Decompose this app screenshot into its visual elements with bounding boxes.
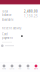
staticText: 1,150.25 — [24, 14, 38, 18]
button[interactable]: Cards — [8, 62, 16, 72]
staticText: More — [34, 68, 38, 70]
staticText: Available — [2, 18, 14, 21]
button[interactable]: Help — [24, 62, 32, 72]
staticText: Recent activity — [2, 26, 21, 30]
staticText: 2,480.00 — [24, 10, 38, 13]
staticText: Overview — [2, 7, 13, 11]
button[interactable]: Pay — [16, 62, 24, 72]
staticText: Home — [2, 68, 6, 70]
staticText: Pay — [18, 68, 21, 70]
button[interactable]: More — [32, 62, 40, 72]
staticText: Cards — [9, 68, 14, 70]
staticText: Help — [26, 68, 29, 70]
staticText: Total balance — [2, 10, 12, 17]
button[interactable]: Home — [0, 62, 8, 72]
staticText: Card payment — [2, 33, 13, 40]
